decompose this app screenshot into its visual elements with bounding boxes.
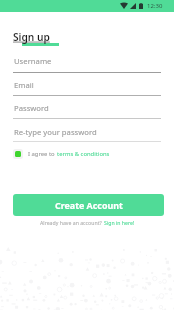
staticText: Create Account (55, 199, 123, 211)
staticText: Sign up (13, 30, 50, 44)
staticText: Re-type your password (14, 127, 97, 137)
button[interactable]: Create Account (13, 194, 164, 216)
staticText: Email (14, 80, 34, 90)
button[interactable]: I agree to (13, 148, 110, 159)
staticText: I agree to (28, 150, 57, 158)
staticText: Username (14, 56, 52, 66)
staticText: terms & conditions (57, 150, 110, 158)
button[interactable]: Sign in here! (104, 219, 135, 226)
staticText: Already have an account? (40, 219, 104, 226)
staticText: 12:30 (147, 2, 163, 10)
staticText: Password (14, 103, 49, 113)
